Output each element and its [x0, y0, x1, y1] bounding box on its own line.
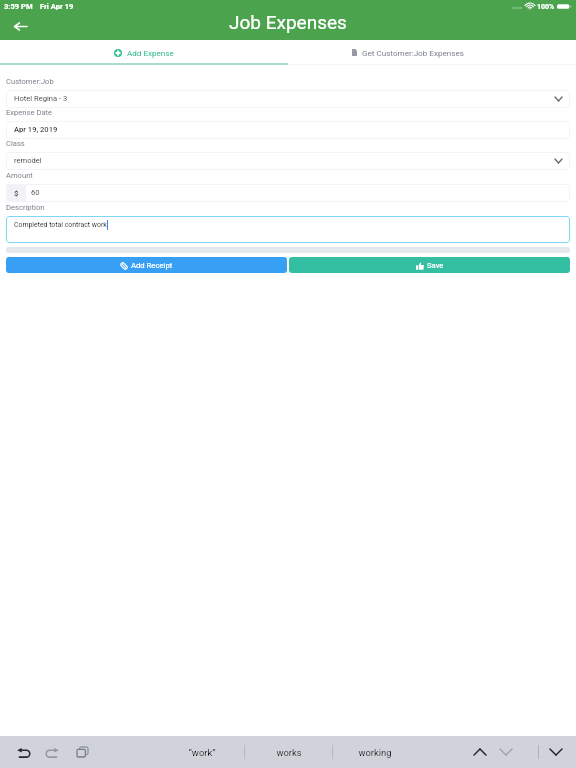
staticText: Add Expense [127, 48, 174, 57]
staticText: Customer:Job [6, 77, 54, 86]
staticText: Description [6, 203, 45, 212]
button[interactable]: Hotel Regina - 3 [6, 90, 570, 108]
staticText: 3:59 PM [4, 2, 33, 11]
staticText: Job Expenses [229, 11, 347, 33]
button[interactable]: Redo [40, 736, 64, 768]
button[interactable]: Undo [11, 736, 35, 768]
button[interactable]: Next [494, 736, 518, 768]
button[interactable]: $ [6, 184, 570, 202]
staticText: Class [6, 139, 25, 148]
staticText: $ [14, 189, 19, 198]
button[interactable]: working [333, 736, 417, 768]
button[interactable]: Hide keyboard [544, 736, 568, 768]
staticText: Add Receipt [131, 261, 173, 270]
button[interactable]: Previous [468, 736, 492, 768]
button[interactable]: Completed total contract work [6, 216, 570, 243]
button[interactable]: Save [289, 257, 570, 273]
staticText: Completed total contract work [14, 221, 107, 229]
staticText: Amount [6, 171, 33, 180]
button[interactable]: “work” [159, 736, 245, 768]
button[interactable]: works [245, 736, 332, 768]
staticText: Expense Date [6, 108, 53, 117]
staticText: 60 [31, 188, 40, 197]
button[interactable]: Get Customer:Job Expenses [288, 40, 576, 65]
button[interactable]: Apr 19, 2019 [6, 121, 570, 139]
staticText: working [358, 747, 392, 758]
button[interactable]: Paste [70, 736, 94, 768]
staticText: Fri Apr 19 [40, 2, 74, 11]
button[interactable]: Back [8, 15, 32, 39]
button[interactable]: Add Receipt [6, 257, 287, 273]
staticText: remodel [14, 156, 42, 165]
staticText: Save [427, 261, 444, 270]
staticText: 100% [537, 3, 555, 11]
staticText: Hotel Regina - 3 [14, 94, 68, 103]
button[interactable]: Add Expense [0, 40, 288, 65]
button[interactable]: remodel [6, 152, 570, 170]
staticText: works [276, 747, 302, 758]
staticText: “work” [188, 747, 216, 758]
staticText: Apr 19, 2019 [14, 125, 58, 134]
staticText: Get Customer:Job Expenses [362, 48, 464, 57]
